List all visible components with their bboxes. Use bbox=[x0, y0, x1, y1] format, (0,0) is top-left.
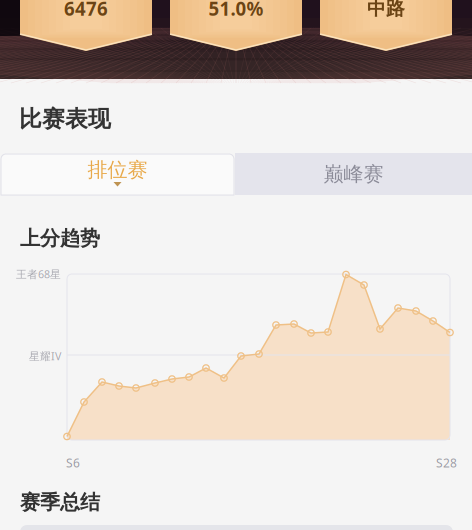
staticText: 赛季总结 bbox=[20, 490, 100, 515]
staticText: 上分趋势 bbox=[20, 226, 100, 251]
button[interactable]: 排位赛 bbox=[0, 153, 235, 195]
staticText: 星耀IV bbox=[29, 349, 61, 363]
staticText: 比赛表现 bbox=[19, 105, 111, 133]
staticText: S6 bbox=[66, 455, 80, 471]
staticText: 6476 bbox=[64, 0, 108, 21]
staticText: 中路 bbox=[367, 0, 405, 20]
staticText: 排位赛 bbox=[87, 157, 147, 182]
staticText: 巅峰赛 bbox=[323, 162, 383, 186]
button[interactable]: 巅峰赛 bbox=[235, 153, 472, 195]
staticText: 51.0% bbox=[208, 0, 263, 21]
staticText: S28 bbox=[436, 455, 457, 471]
staticText: 王者68星 bbox=[16, 267, 61, 281]
